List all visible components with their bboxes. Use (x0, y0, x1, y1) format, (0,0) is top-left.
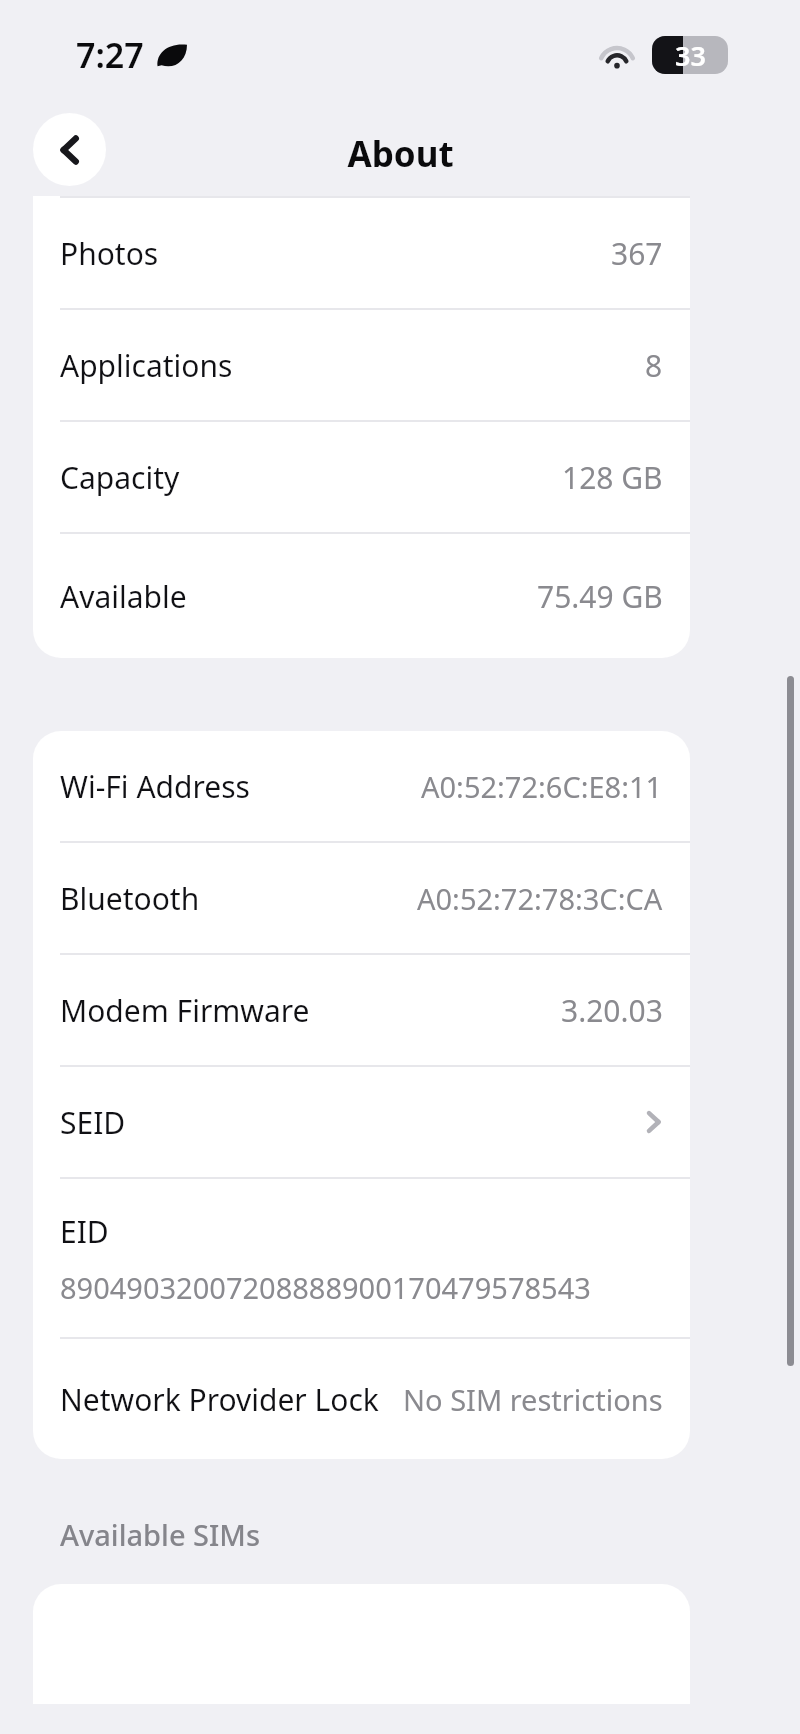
button[interactable]: SEID (33, 1067, 690, 1177)
staticText: A0:52:72:78:3C:CA (417, 879, 663, 918)
staticText: Applications (60, 345, 233, 386)
button[interactable]: Applications (33, 310, 690, 420)
button[interactable]: Wi-Fi Address (33, 731, 690, 841)
button[interactable]: Back (33, 113, 106, 186)
staticText: No SIM restrictions (403, 1380, 663, 1419)
button[interactable]: Modem Firmware (33, 955, 690, 1065)
button[interactable]: Available (33, 534, 690, 658)
staticText: 367 (611, 233, 663, 274)
staticText: 8 (645, 345, 663, 386)
staticText: Wi-Fi Address (60, 766, 250, 807)
staticText: 33 (675, 37, 706, 74)
staticText: SEID (60, 1102, 126, 1143)
button[interactable]: EID (33, 1179, 690, 1337)
staticText: Capacity (60, 457, 180, 498)
staticText: 3.20.03 (561, 990, 663, 1031)
button[interactable]: Capacity (33, 422, 690, 532)
staticText: 7:27 (76, 32, 144, 78)
staticText: 128 GB (562, 457, 663, 498)
staticText: 75.49 GB (537, 576, 663, 617)
staticText: Available (60, 576, 187, 617)
staticText: About (347, 130, 454, 178)
staticText: 89049032007208888900170479578543 (60, 1268, 591, 1307)
button[interactable]: Photos (33, 198, 690, 308)
staticText: A0:52:72:6C:E8:11 (421, 767, 663, 806)
button[interactable]: Network Provider Lock (33, 1339, 690, 1459)
staticText: Modem Firmware (60, 990, 310, 1031)
staticText: Available SIMs (60, 1515, 261, 1554)
staticText: EID (60, 1211, 109, 1252)
staticText: Photos (60, 233, 159, 274)
button[interactable]: Bluetooth (33, 843, 690, 953)
staticText: Bluetooth (60, 878, 200, 919)
staticText: Network Provider Lock (60, 1379, 379, 1420)
